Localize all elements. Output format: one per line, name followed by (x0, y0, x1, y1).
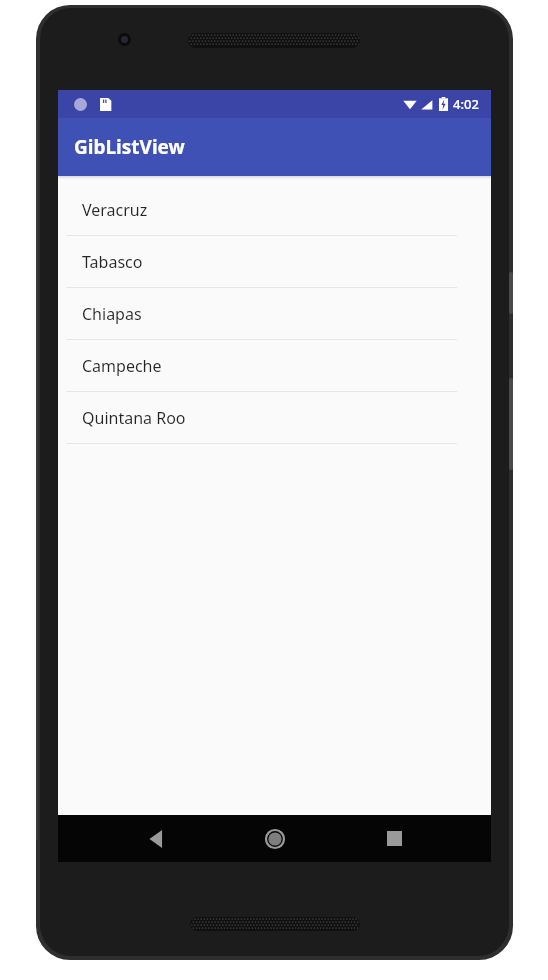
staticText: 4:02 (453, 95, 479, 113)
staticText: Campeche (82, 355, 162, 377)
button[interactable]: Chiapas (58, 288, 491, 340)
button[interactable]: Home (252, 815, 298, 862)
staticText: GibListView (74, 134, 185, 160)
button[interactable]: Veracruz (58, 184, 491, 236)
staticText: Tabasco (82, 251, 143, 273)
button[interactable]: Tabasco (58, 236, 491, 288)
button[interactable]: Recent apps (371, 815, 417, 862)
button[interactable]: Quintana Roo (58, 392, 491, 444)
staticText: Veracruz (82, 199, 148, 221)
staticText: Chiapas (82, 303, 142, 325)
button[interactable]: Campeche (58, 340, 491, 392)
button[interactable]: Back (134, 815, 180, 862)
staticText: Quintana Roo (82, 407, 186, 429)
